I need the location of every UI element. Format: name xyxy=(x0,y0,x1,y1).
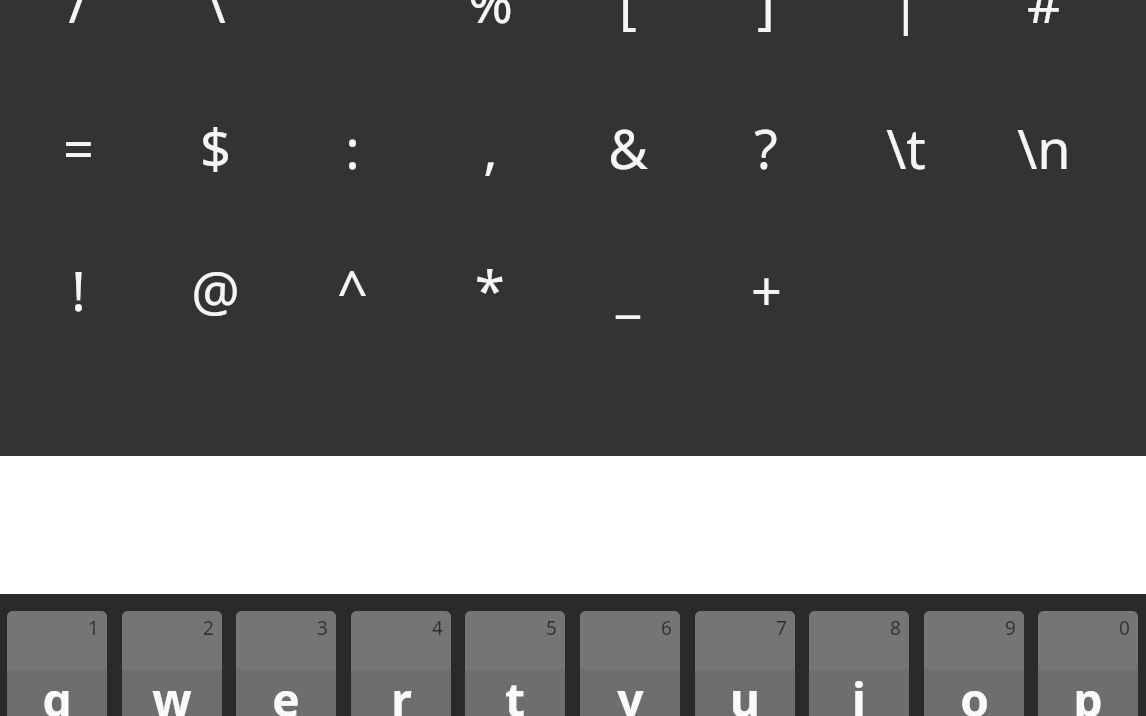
button[interactable]: \ xyxy=(147,0,283,65)
button[interactable]: % xyxy=(422,0,558,65)
button[interactable]: 3 xyxy=(236,611,336,716)
staticText: r xyxy=(391,668,412,716)
staticText: 4 xyxy=(432,615,443,641)
button[interactable]: \t xyxy=(838,85,974,211)
staticText: & xyxy=(608,111,648,185)
staticText: \n xyxy=(1017,111,1071,185)
button[interactable]: 5 xyxy=(465,611,565,716)
staticText: ] xyxy=(757,0,775,39)
staticText: t xyxy=(505,668,525,716)
button[interactable]: + xyxy=(698,227,834,353)
staticText: e xyxy=(272,668,300,716)
button[interactable]: _ xyxy=(560,227,696,353)
staticText: y xyxy=(617,668,644,716)
staticText: + xyxy=(751,253,782,327)
button[interactable]: * xyxy=(422,227,558,353)
staticText: [ xyxy=(619,0,637,39)
staticText: \ xyxy=(205,0,226,39)
staticText: / xyxy=(68,0,89,39)
staticText: 3 xyxy=(317,615,328,641)
button[interactable]: ] xyxy=(698,0,834,65)
staticText: 9 xyxy=(1005,615,1016,641)
button[interactable]: ^ xyxy=(284,227,420,353)
staticText: % xyxy=(468,0,513,39)
button[interactable]: | xyxy=(838,0,974,65)
staticText: _ xyxy=(616,253,640,327)
staticText: o xyxy=(960,668,989,716)
button[interactable]: : xyxy=(284,85,420,211)
button[interactable]: 6 xyxy=(580,611,680,716)
staticText: p xyxy=(1073,668,1103,716)
button[interactable]: 8 xyxy=(809,611,909,716)
button[interactable]: 4 xyxy=(351,611,451,716)
staticText: : xyxy=(345,111,360,185)
staticText: ? xyxy=(754,111,778,185)
staticText: 5 xyxy=(546,615,557,641)
button[interactable]: ? xyxy=(698,85,834,211)
staticText: 8 xyxy=(890,615,901,641)
staticText: u xyxy=(730,668,760,716)
staticText: | xyxy=(891,0,921,39)
button[interactable]: 0 xyxy=(1038,611,1138,716)
staticText: 2 xyxy=(203,615,214,641)
button[interactable]: @ xyxy=(147,227,283,353)
staticText: ^ xyxy=(337,253,368,327)
staticText: \t xyxy=(886,111,926,185)
button[interactable]: ! xyxy=(10,227,146,353)
staticText: = xyxy=(63,111,94,185)
staticText: ! xyxy=(71,253,86,327)
button[interactable]: 9 xyxy=(924,611,1024,716)
staticText: 6 xyxy=(661,615,672,641)
staticText: # xyxy=(1027,0,1062,39)
staticText: @ xyxy=(191,253,240,327)
button[interactable]: & xyxy=(560,85,696,211)
button[interactable]: 1 xyxy=(7,611,107,716)
staticText: * xyxy=(475,253,505,327)
button[interactable]: , xyxy=(422,85,558,211)
button[interactable]: \n xyxy=(976,85,1112,211)
button[interactable]: # xyxy=(976,0,1112,65)
staticText: i xyxy=(852,668,866,716)
button[interactable]: = xyxy=(10,85,146,211)
button[interactable]: [ xyxy=(560,0,696,65)
staticText: , xyxy=(483,111,498,185)
staticText: 7 xyxy=(776,615,787,641)
button[interactable]: $ xyxy=(147,85,283,211)
staticText: $ xyxy=(200,111,231,185)
staticText: w xyxy=(152,668,192,716)
staticText: 0 xyxy=(1119,615,1130,641)
button[interactable]: 7 xyxy=(695,611,795,716)
button[interactable]: 2 xyxy=(122,611,222,716)
staticText: q xyxy=(42,668,72,716)
staticText: 1 xyxy=(88,615,99,641)
button[interactable]: / xyxy=(10,0,146,65)
